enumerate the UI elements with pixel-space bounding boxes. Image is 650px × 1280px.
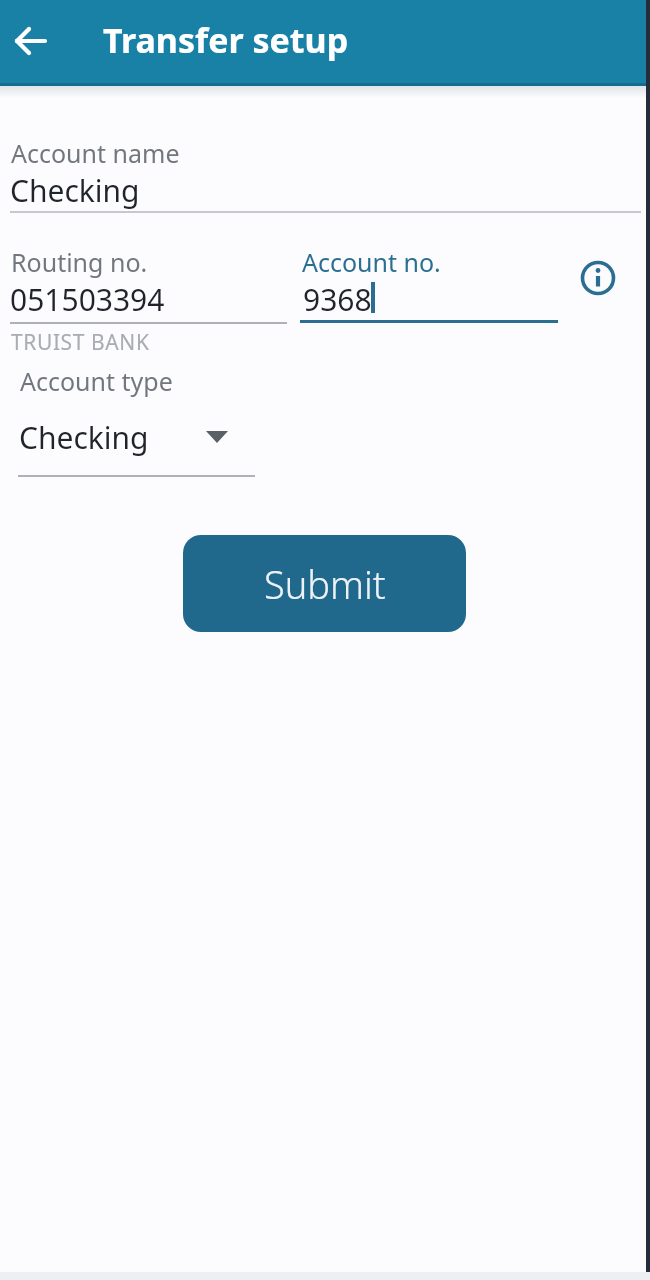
staticText: Checking — [10, 170, 140, 211]
staticText: Account name — [11, 136, 180, 170]
staticText: 9368 — [303, 279, 372, 320]
staticText: Account type — [20, 364, 173, 398]
staticText: Account no. — [302, 245, 441, 279]
staticText: Routing no. — [11, 245, 148, 279]
staticText: 051503394 — [10, 279, 165, 320]
button[interactable] — [576, 256, 620, 300]
staticText: Checking — [19, 417, 149, 458]
button[interactable]: Checking — [18, 410, 258, 465]
staticText: TRUIST BANK — [11, 328, 150, 357]
staticText: Transfer setup — [103, 17, 349, 63]
button[interactable]: Submit — [183, 535, 466, 632]
button[interactable] — [0, 12, 62, 74]
staticText: Submit — [264, 558, 386, 610]
